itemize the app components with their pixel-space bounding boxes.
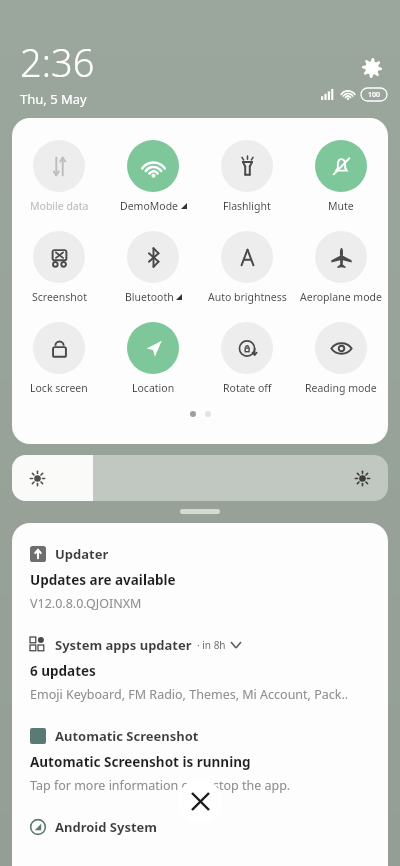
staticText: DemoMode	[120, 199, 179, 213]
staticText: V12.0.8.0.QJOINXM	[30, 595, 142, 612]
button[interactable]: Clear all notifications	[178, 779, 222, 823]
button[interactable]: Auto brightness	[200, 229, 294, 306]
button[interactable]: Aeroplane mode	[294, 229, 388, 306]
button[interactable]: Bluetooth	[106, 229, 200, 306]
staticText: 100	[368, 90, 381, 100]
staticText: · in 8h	[197, 638, 226, 652]
button[interactable]: Automatic Screenshot	[30, 727, 370, 794]
staticText: Mobile data	[30, 199, 89, 213]
staticText: Aeroplane mode	[300, 290, 382, 304]
button[interactable]: Lock screen	[12, 320, 106, 397]
button[interactable]: DemoMode	[106, 138, 200, 215]
staticText: Automatic Screenshot	[55, 727, 199, 745]
staticText: Tap for more information or to stop the …	[30, 777, 291, 794]
staticText: Updates are available	[30, 571, 176, 589]
staticText: Emoji Keyboard, FM Radio, Themes, Mi Acc…	[30, 686, 349, 703]
button[interactable]: Mute	[294, 138, 388, 215]
button[interactable]: Flashlight	[200, 138, 294, 215]
staticText: Auto brightness	[208, 290, 287, 304]
button[interactable]: Reading mode	[294, 320, 388, 397]
staticText: Updater	[55, 545, 109, 563]
staticText: Screenshot	[32, 290, 87, 304]
staticText: Location	[132, 381, 175, 395]
staticText: System apps updater	[55, 636, 192, 654]
button[interactable]: Settings	[352, 48, 392, 88]
button[interactable]: Screenshot	[12, 229, 106, 306]
button[interactable]: System apps updater	[30, 636, 370, 703]
button[interactable]: Rotate off	[200, 320, 294, 397]
button[interactable]: Location	[106, 320, 200, 397]
staticText: Mute	[328, 199, 354, 213]
staticText: Bluetooth	[125, 290, 174, 304]
staticText: 2:36	[20, 36, 95, 88]
staticText: Thu, 5 May	[20, 90, 87, 108]
staticText: Lock screen	[30, 381, 88, 395]
staticText: Android System	[55, 818, 158, 836]
staticText: Rotate off	[223, 381, 272, 395]
staticText: 6 updates	[30, 662, 96, 680]
staticText: Flashlight	[223, 199, 271, 213]
button[interactable]: Updater	[30, 545, 370, 612]
button[interactable]: Mobile data	[12, 138, 106, 215]
staticText: Automatic Screenshot is running	[30, 753, 251, 771]
button[interactable]: Brightness	[12, 455, 388, 501]
staticText: Reading mode	[305, 381, 377, 395]
